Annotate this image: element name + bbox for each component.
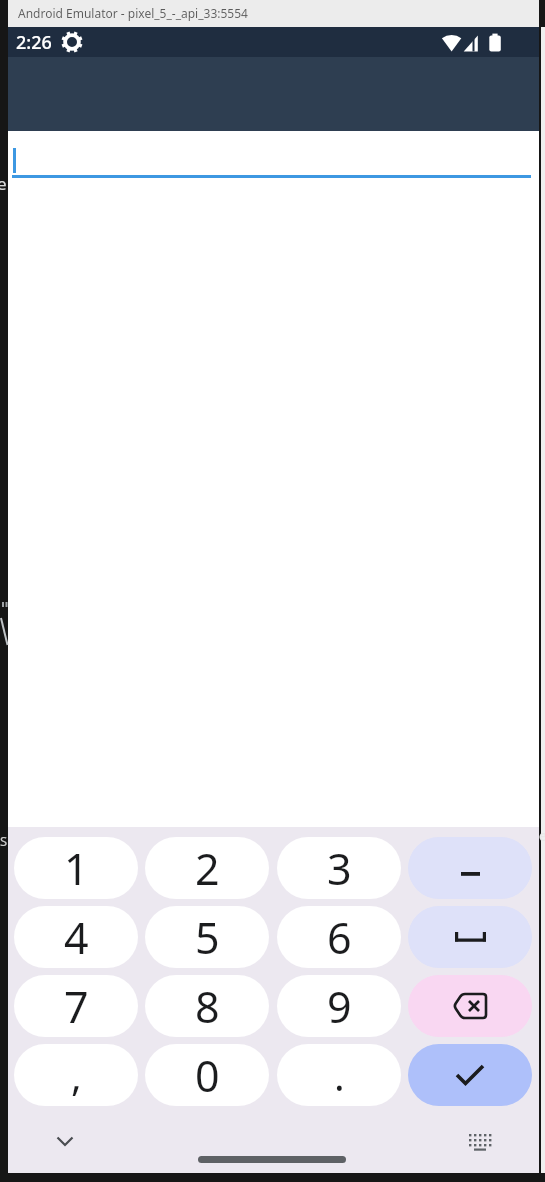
- button[interactable]: 1: [14, 837, 138, 899]
- staticText: 2:26: [16, 30, 52, 55]
- staticText: 4: [64, 908, 89, 967]
- staticText: 9: [327, 977, 352, 1036]
- staticText: 0: [195, 1046, 220, 1105]
- staticText: S: [0, 832, 8, 850]
- button[interactable]: [408, 906, 532, 968]
- staticText: 7: [64, 977, 89, 1036]
- button[interactable]: [408, 975, 532, 1037]
- button[interactable]: ,: [14, 1044, 138, 1106]
- staticText: Android Emulator - pixel_5_-_api_33:5554: [18, 5, 248, 21]
- staticText: 1: [64, 839, 89, 898]
- staticText: .: [334, 1048, 345, 1102]
- button[interactable]: 0: [145, 1044, 269, 1106]
- button[interactable]: 7: [14, 975, 138, 1037]
- button[interactable]: 9: [277, 975, 401, 1037]
- button[interactable]: [408, 1044, 532, 1106]
- button[interactable]: 3: [277, 837, 401, 899]
- staticText: 5: [195, 908, 220, 967]
- button[interactable]: 5: [145, 906, 269, 968]
- button[interactable]: .: [277, 1044, 401, 1106]
- button[interactable]: [462, 1127, 498, 1157]
- button[interactable]: 6: [277, 906, 401, 968]
- staticText: 6: [327, 908, 352, 967]
- staticText: ,: [71, 1048, 82, 1102]
- button[interactable]: [48, 1126, 82, 1156]
- button[interactable]: 4: [14, 906, 138, 968]
- button[interactable]: [8, 131, 539, 827]
- button[interactable]: 8: [145, 975, 269, 1037]
- staticText: 8: [195, 977, 220, 1036]
- staticText: 2: [195, 839, 220, 898]
- staticText: e: [0, 172, 7, 195]
- staticText: e: [539, 826, 545, 845]
- staticText: 3: [327, 839, 352, 898]
- button[interactable]: 2: [145, 837, 269, 899]
- button[interactable]: [408, 837, 532, 899]
